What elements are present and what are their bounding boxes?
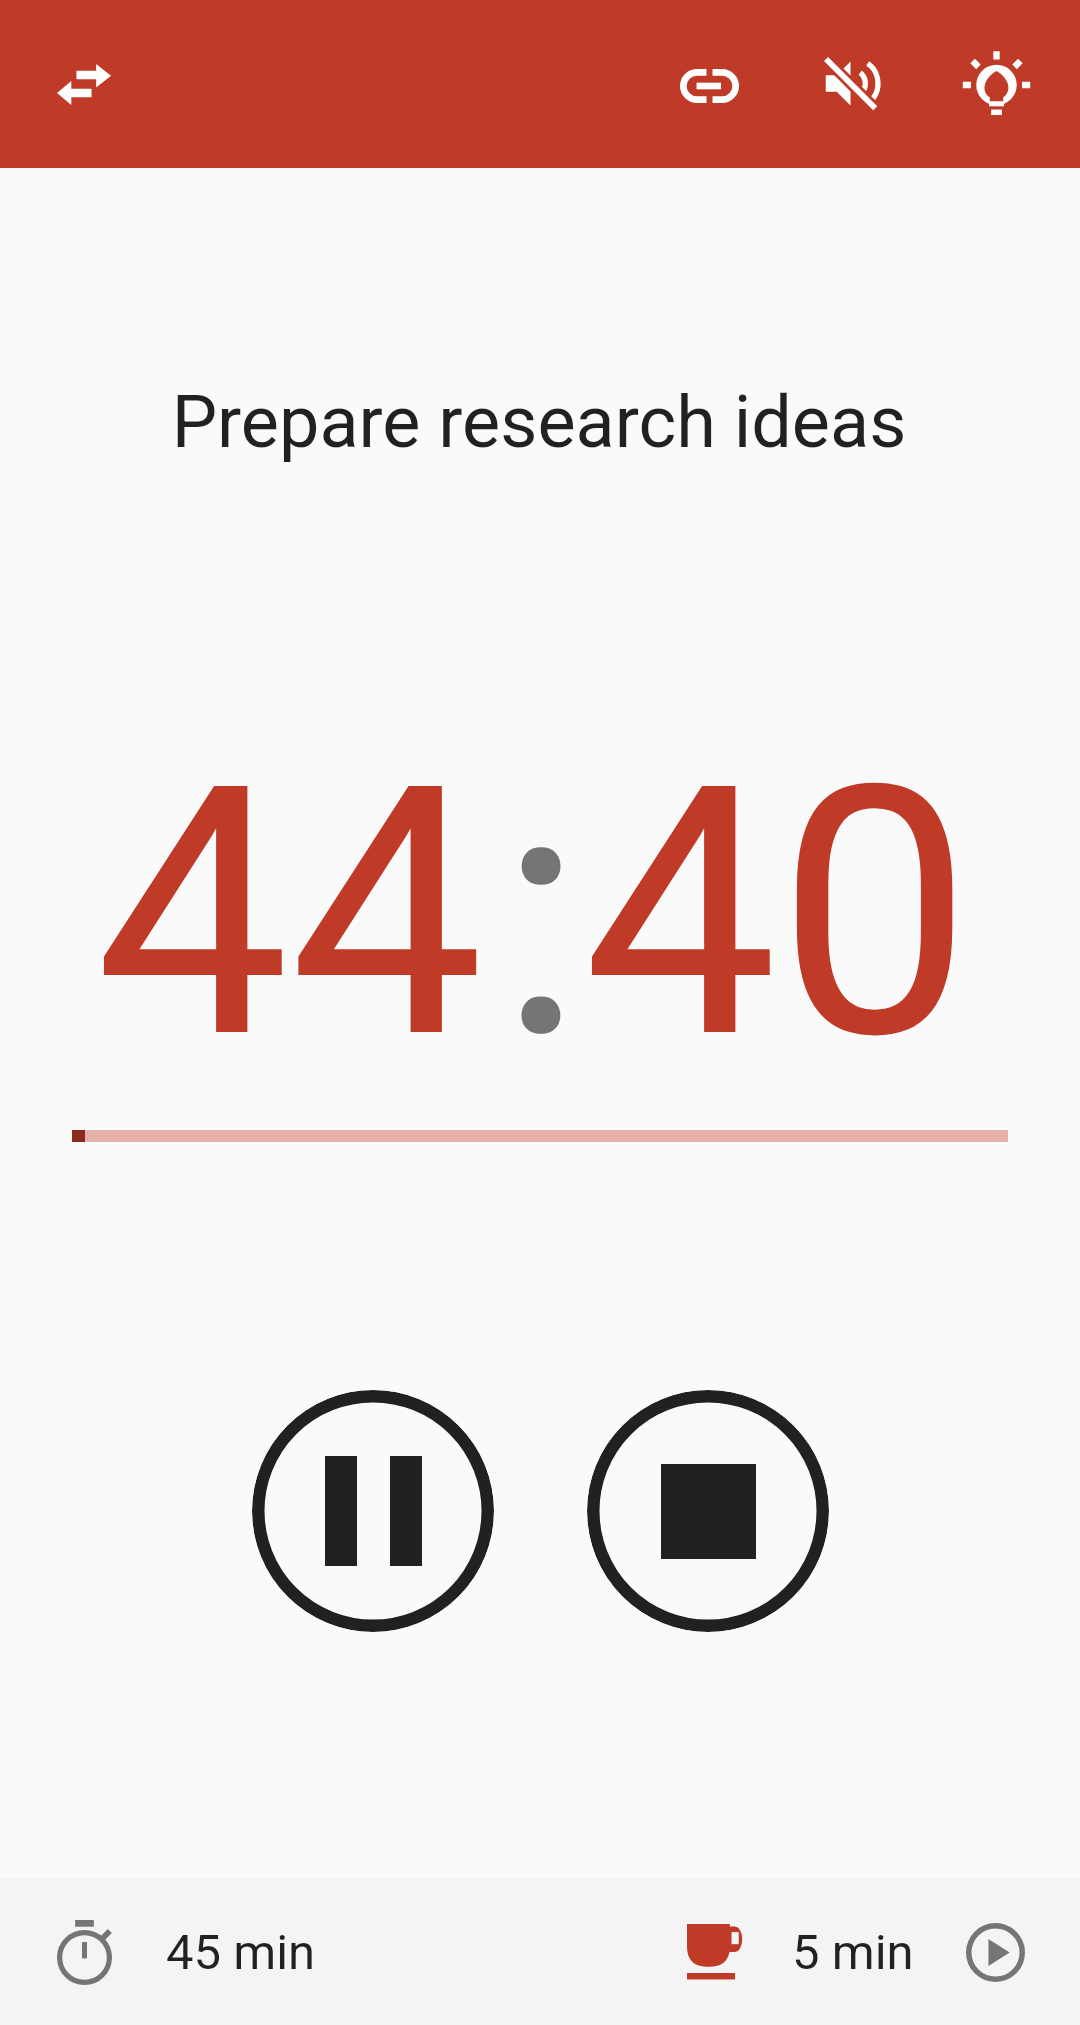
button[interactable]: Link timers [661, 38, 757, 134]
button[interactable]: Start break [956, 1913, 1035, 1992]
button[interactable]: Keep screen on [948, 38, 1044, 134]
button[interactable]: Pause [252, 1390, 494, 1632]
button[interactable]: Mute [802, 35, 898, 131]
button[interactable]: Swap work and break [36, 38, 132, 134]
staticText: 45 min [166, 1924, 316, 1981]
staticText: 5 min [792, 1924, 914, 1981]
button[interactable]: 45 min [20, 1879, 360, 2025]
staticText: Prepare research ideas [0, 380, 1079, 464]
button[interactable]: Stop [587, 1390, 829, 1632]
button[interactable]: 5 min [660, 1879, 940, 2025]
staticText: 44 [95, 711, 484, 1116]
staticText: : [499, 711, 583, 1116]
staticText: 40 [583, 711, 972, 1116]
